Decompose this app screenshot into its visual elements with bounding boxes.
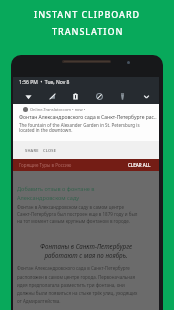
staticText: Фонтаны в Санкт-Петербурге работают с ма… [13,242,159,260]
staticText: Фонтан в Александровском саду в самом це… [17,204,138,224]
button[interactable]: SHARE [20,144,44,157]
staticText: CLOSE [43,148,57,153]
staticText: Добавить отзыв о фонтане в Александровск… [17,185,95,202]
button[interactable]: Expand quick settings [140,90,153,103]
staticText: 1:56 PM • Tue, Nov 8 [19,79,70,86]
staticText: SHARE [25,148,39,153]
staticText: Горящие Туры в Россию [19,162,72,168]
staticText: TRANSLATION [52,25,124,37]
button[interactable]: CLEAR ALL [120,160,159,170]
staticText: INSTANT CLIPBOARD [34,8,141,20]
staticText: Online-Translator.com • now • [30,107,87,112]
button[interactable]: CLOSE [38,144,62,157]
button[interactable]: Flashlight [116,90,129,103]
button[interactable]: Battery saver [69,90,82,103]
staticText: The fountain of the Alexander Garden in … [19,122,140,134]
button[interactable]: Do not disturb [93,90,106,103]
staticText: CLEAR ALL [128,162,151,168]
button[interactable]: Wi-Fi [22,90,35,103]
staticText: Фонтан Александровского сада в Санкт-Пет… [19,114,157,121]
staticText: Фонтан Александровского сада в Санкт-Пет… [17,265,138,304]
button[interactable]: Mute [46,90,59,103]
